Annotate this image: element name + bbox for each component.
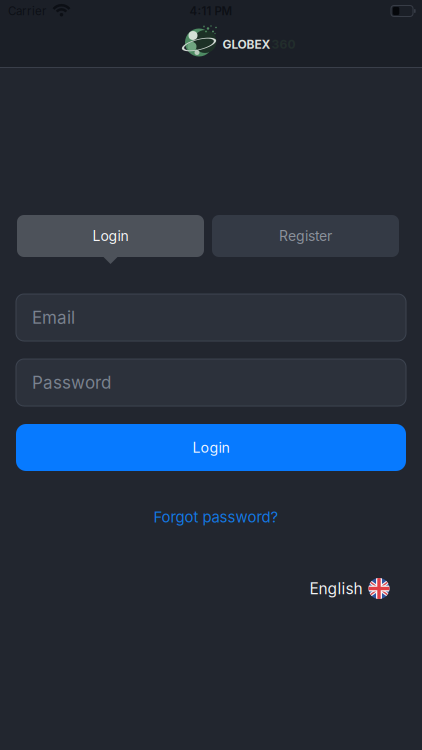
staticText: 360 [271, 37, 295, 52]
staticText: GLOBEX [222, 37, 270, 52]
staticText: Password [32, 372, 111, 393]
button[interactable]: Forgot password? [153, 508, 278, 526]
staticText: Email [32, 307, 75, 328]
staticText: Carrier [8, 4, 46, 18]
staticText: Register [279, 227, 332, 244]
staticText: Login [192, 439, 229, 456]
button[interactable]: Register [212, 215, 399, 257]
button[interactable]: Email [16, 294, 406, 341]
button[interactable]: Login [17, 215, 204, 265]
staticText: English [309, 579, 362, 598]
button[interactable]: Change language [309, 578, 389, 599]
staticText: Login [92, 227, 128, 244]
button[interactable]: Login [16, 424, 406, 471]
staticText: Forgot password? [153, 508, 278, 526]
staticText: 4:11 PM [189, 4, 232, 18]
button[interactable]: Password [16, 359, 406, 406]
